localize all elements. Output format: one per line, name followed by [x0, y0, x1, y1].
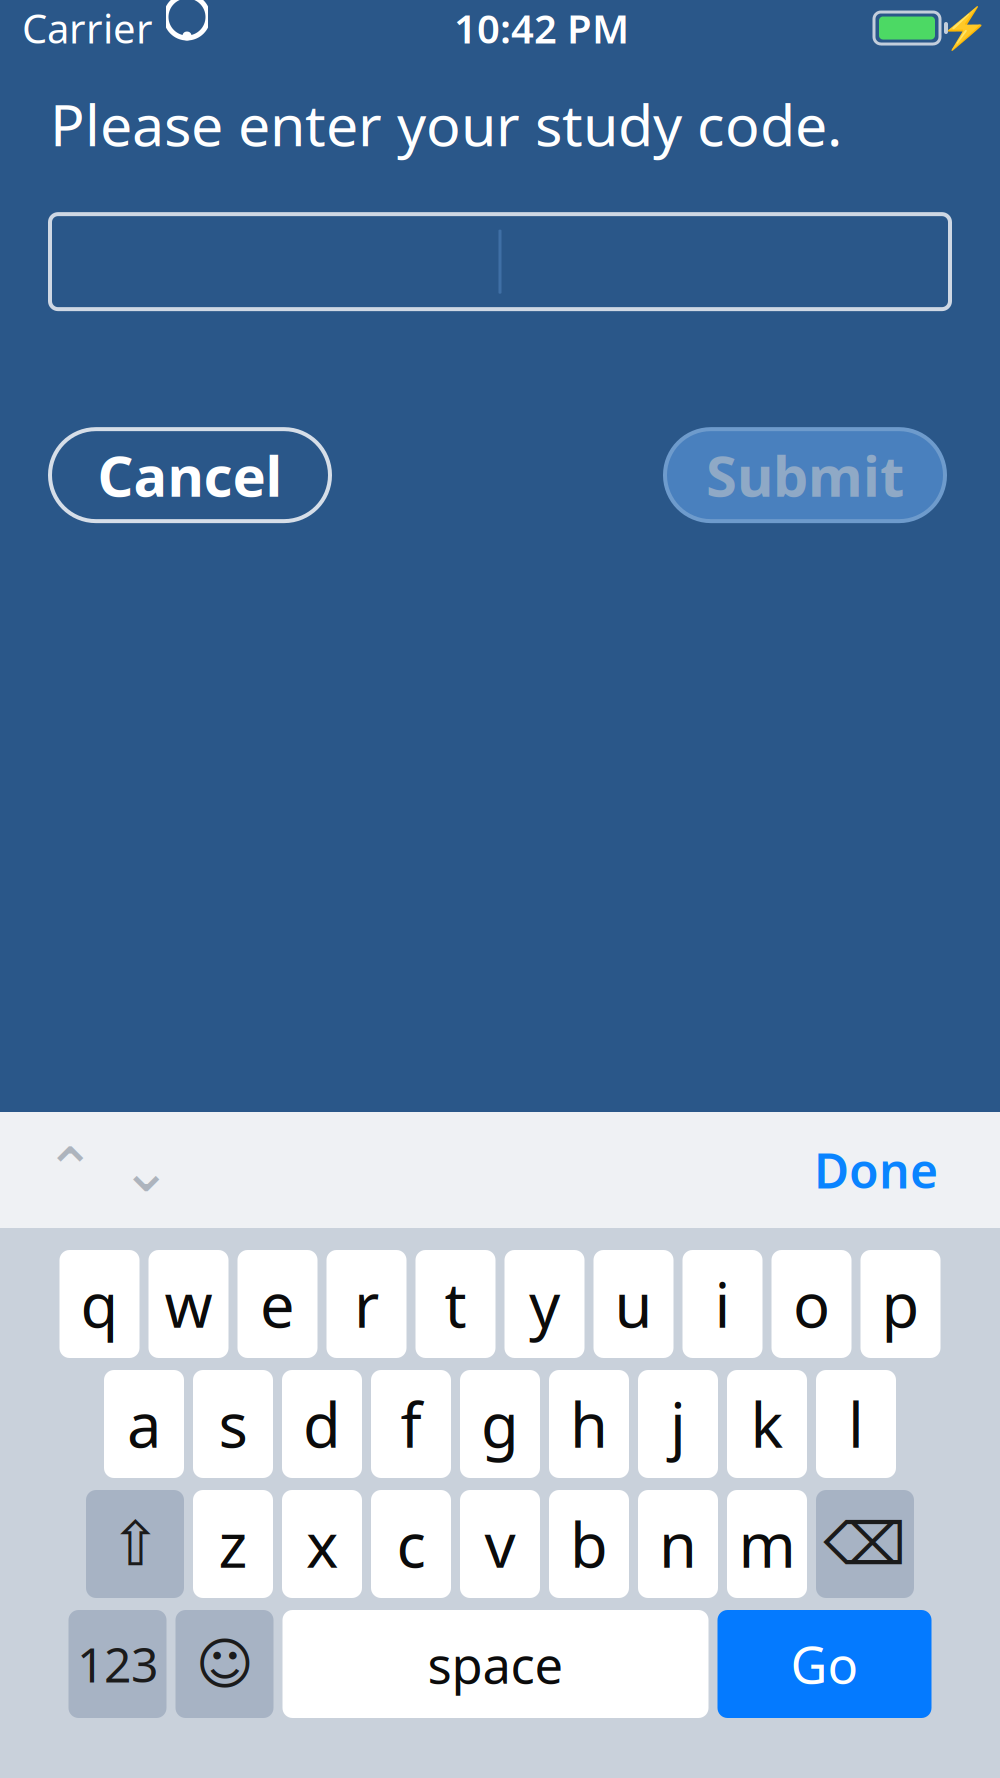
staticText: d	[303, 1383, 341, 1465]
staticText: Submit	[706, 438, 904, 512]
button[interactable]: Cancel	[50, 429, 330, 521]
staticText: k	[750, 1383, 783, 1465]
button[interactable]: k	[727, 1370, 807, 1478]
staticText: u	[614, 1263, 652, 1345]
staticText: o	[793, 1263, 830, 1345]
staticText: e	[260, 1263, 295, 1345]
staticText: m	[738, 1503, 795, 1585]
button[interactable]: Next field	[108, 1120, 184, 1220]
button[interactable]	[0, 214, 1000, 309]
button[interactable]: y	[504, 1250, 584, 1358]
staticText: 10:42 PM	[454, 1, 629, 54]
button[interactable]: Submit	[665, 429, 945, 521]
staticText: ☺	[195, 1632, 253, 1696]
button[interactable]: u	[593, 1250, 673, 1358]
staticText: q	[80, 1263, 118, 1345]
staticText: space	[427, 1630, 563, 1698]
staticText: c	[396, 1503, 425, 1585]
button[interactable]: n	[638, 1490, 718, 1598]
button[interactable]: h	[549, 1370, 629, 1478]
staticText: h	[570, 1383, 608, 1465]
button[interactable]: t	[415, 1250, 495, 1358]
button[interactable]: Delete	[816, 1490, 914, 1598]
button[interactable]: i	[682, 1250, 762, 1358]
staticText: g	[481, 1383, 519, 1465]
staticText: w	[164, 1263, 212, 1345]
button[interactable]: m	[727, 1490, 807, 1598]
staticText: x	[306, 1503, 338, 1585]
staticText: z	[218, 1503, 247, 1585]
staticText: 123	[77, 1632, 158, 1696]
staticText: Carrier	[22, 1, 153, 54]
staticText: i	[714, 1263, 730, 1345]
staticText: l	[848, 1383, 864, 1465]
button[interactable]: s	[193, 1370, 273, 1478]
button[interactable]: r	[326, 1250, 406, 1358]
button[interactable]: f	[371, 1370, 451, 1478]
button[interactable]: l	[816, 1370, 896, 1478]
staticText: v	[484, 1503, 515, 1585]
staticText: Please enter your study code.	[50, 86, 842, 162]
button[interactable]: c	[371, 1490, 451, 1598]
staticText: ⚡	[940, 5, 990, 51]
button[interactable]: z	[193, 1490, 273, 1598]
button[interactable]: e	[237, 1250, 317, 1358]
button[interactable]: j	[638, 1370, 718, 1478]
button[interactable]: Previous field	[32, 1120, 108, 1220]
staticText: ⌃	[44, 1135, 95, 1205]
button[interactable]: v	[460, 1490, 540, 1598]
staticText: ⌄	[120, 1135, 171, 1205]
staticText: s	[218, 1383, 247, 1465]
staticText: n	[659, 1503, 697, 1585]
button[interactable]: 123	[68, 1610, 166, 1718]
button[interactable]: a	[104, 1370, 184, 1478]
button[interactable]: Done	[784, 1120, 968, 1220]
button[interactable]: d	[282, 1370, 362, 1478]
button[interactable]: Go	[717, 1610, 931, 1718]
button[interactable]: Emoji	[175, 1610, 273, 1718]
button[interactable]: o	[771, 1250, 851, 1358]
staticText: t	[444, 1263, 466, 1345]
button[interactable]: w	[148, 1250, 228, 1358]
staticText: j	[670, 1383, 686, 1465]
staticText: r	[354, 1263, 379, 1345]
button[interactable]: x	[282, 1490, 362, 1598]
staticText: Cancel	[97, 438, 282, 512]
button[interactable]: Shift	[86, 1490, 184, 1598]
staticText: b	[570, 1503, 608, 1585]
staticText: ⌫	[823, 1511, 906, 1577]
staticText: f	[400, 1383, 421, 1465]
button[interactable]: space	[282, 1610, 708, 1718]
button[interactable]: q	[59, 1250, 139, 1358]
button[interactable]: b	[549, 1490, 629, 1598]
button[interactable]: g	[460, 1370, 540, 1478]
staticText: y	[529, 1263, 560, 1345]
staticText: Go	[790, 1630, 858, 1698]
staticText: p	[881, 1263, 919, 1345]
button[interactable]: p	[860, 1250, 940, 1358]
staticText: ⇧	[109, 1509, 160, 1579]
staticText: Done	[814, 1138, 938, 1202]
staticText: a	[127, 1383, 161, 1465]
